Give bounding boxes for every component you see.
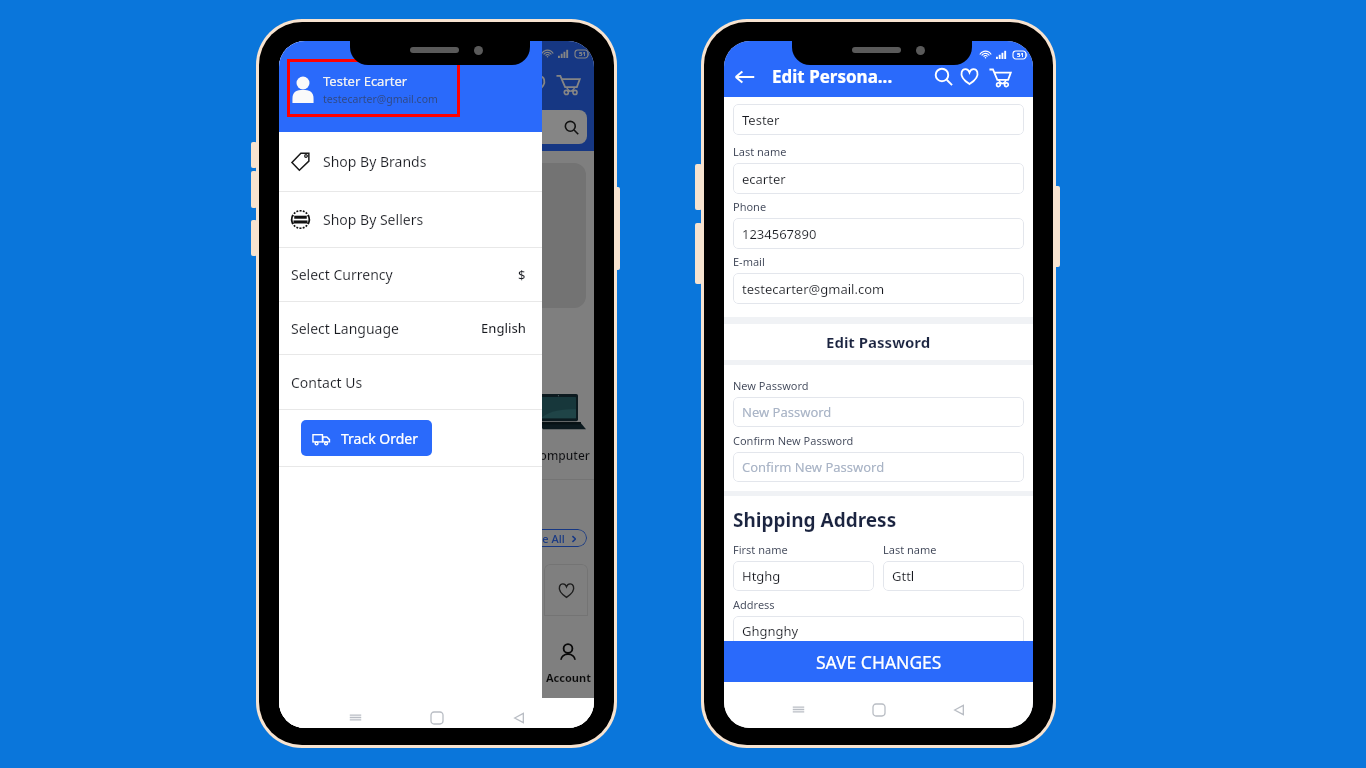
staticText: New Password: [733, 378, 809, 393]
staticText: See All: [530, 531, 565, 546]
staticText: Edit Password: [826, 332, 931, 352]
button[interactable]: ecarter: [733, 163, 1024, 194]
staticText: testecarter@gmail.com: [323, 92, 438, 106]
button[interactable]: Recents: [792, 703, 805, 716]
staticText: Tester Ecarter: [323, 72, 408, 90]
staticText: Tester: [742, 111, 780, 129]
button[interactable]: Wishlist: [960, 67, 979, 86]
button[interactable]: Ghgnghy: [733, 616, 1024, 646]
button[interactable]: Shop By Sellers: [279, 192, 542, 248]
staticText: 1234567890: [742, 225, 817, 243]
button[interactable]: testecarter@gmail.com: [733, 273, 1024, 304]
staticText: SAVE CHANGES: [816, 650, 942, 674]
staticText: Shipping Address: [733, 507, 897, 533]
staticText: testecarter@gmail.com: [742, 280, 885, 298]
staticText: 51: [579, 50, 586, 58]
button[interactable]: Cart: [989, 66, 1011, 88]
staticText: Account: [546, 670, 591, 685]
button[interactable]: New Password: [733, 397, 1024, 427]
button[interactable]: Htghg: [733, 561, 874, 591]
button[interactable]: Home: [431, 712, 443, 724]
staticText: Last name: [733, 144, 787, 159]
staticText: Ghgnghy: [742, 622, 799, 640]
staticText: First name: [733, 542, 788, 557]
staticText: Select Language: [291, 319, 399, 338]
button[interactable]: Confirm New Password: [733, 452, 1024, 482]
staticText: Select Currency: [291, 265, 393, 284]
staticText: Phone: [733, 199, 767, 214]
button[interactable]: Select Currency: [279, 248, 542, 302]
button[interactable]: 1234567890: [733, 218, 1024, 249]
button[interactable]: SAVE CHANGES: [724, 641, 1033, 682]
staticText: New Password: [742, 403, 832, 421]
other: Search: [564, 120, 579, 135]
staticText: E-mail: [733, 254, 765, 269]
button[interactable]: Home: [873, 704, 885, 716]
button[interactable]: Select Language: [279, 302, 542, 355]
staticText: Address: [733, 597, 775, 612]
staticText: 51: [1017, 51, 1024, 59]
button[interactable]: Back: [734, 66, 756, 88]
button[interactable]: Search: [291, 110, 587, 144]
button[interactable]: Shop By Brands: [279, 132, 542, 192]
button[interactable]: Track Order: [301, 420, 432, 456]
button[interactable]: Wishlist: [525, 74, 546, 95]
staticText: Gttl: [892, 567, 915, 585]
button[interactable]: Search: [934, 67, 953, 86]
staticText: Shop By Brands: [323, 152, 427, 171]
staticText: Track Order: [341, 429, 418, 448]
staticText: Shop By Sellers: [323, 210, 424, 229]
staticText: Confirm New Password: [733, 433, 854, 448]
staticText: Htghg: [742, 567, 781, 585]
staticText: Edit Persona...: [772, 65, 893, 88]
button[interactable]: Contact Us: [279, 355, 542, 410]
button[interactable]: See All: [521, 529, 587, 547]
staticText: English: [481, 319, 526, 337]
button[interactable]: Tester: [733, 104, 1024, 135]
staticText: ecarter: [742, 170, 786, 188]
staticText: Contact Us: [291, 373, 363, 392]
button[interactable]: Wishlist: [558, 582, 575, 599]
staticText: $: [518, 266, 526, 284]
button[interactable]: Back: [513, 712, 525, 724]
button[interactable]: Recents: [349, 711, 362, 724]
staticText: Computer: [532, 447, 590, 463]
staticText: Confirm New Password: [742, 458, 885, 476]
button[interactable]: Cart: [556, 72, 580, 96]
button[interactable]: Gttl: [883, 561, 1024, 591]
staticText: Last name: [883, 542, 937, 557]
button[interactable]: Account: [542, 632, 594, 698]
button[interactable]: Back: [953, 704, 965, 716]
